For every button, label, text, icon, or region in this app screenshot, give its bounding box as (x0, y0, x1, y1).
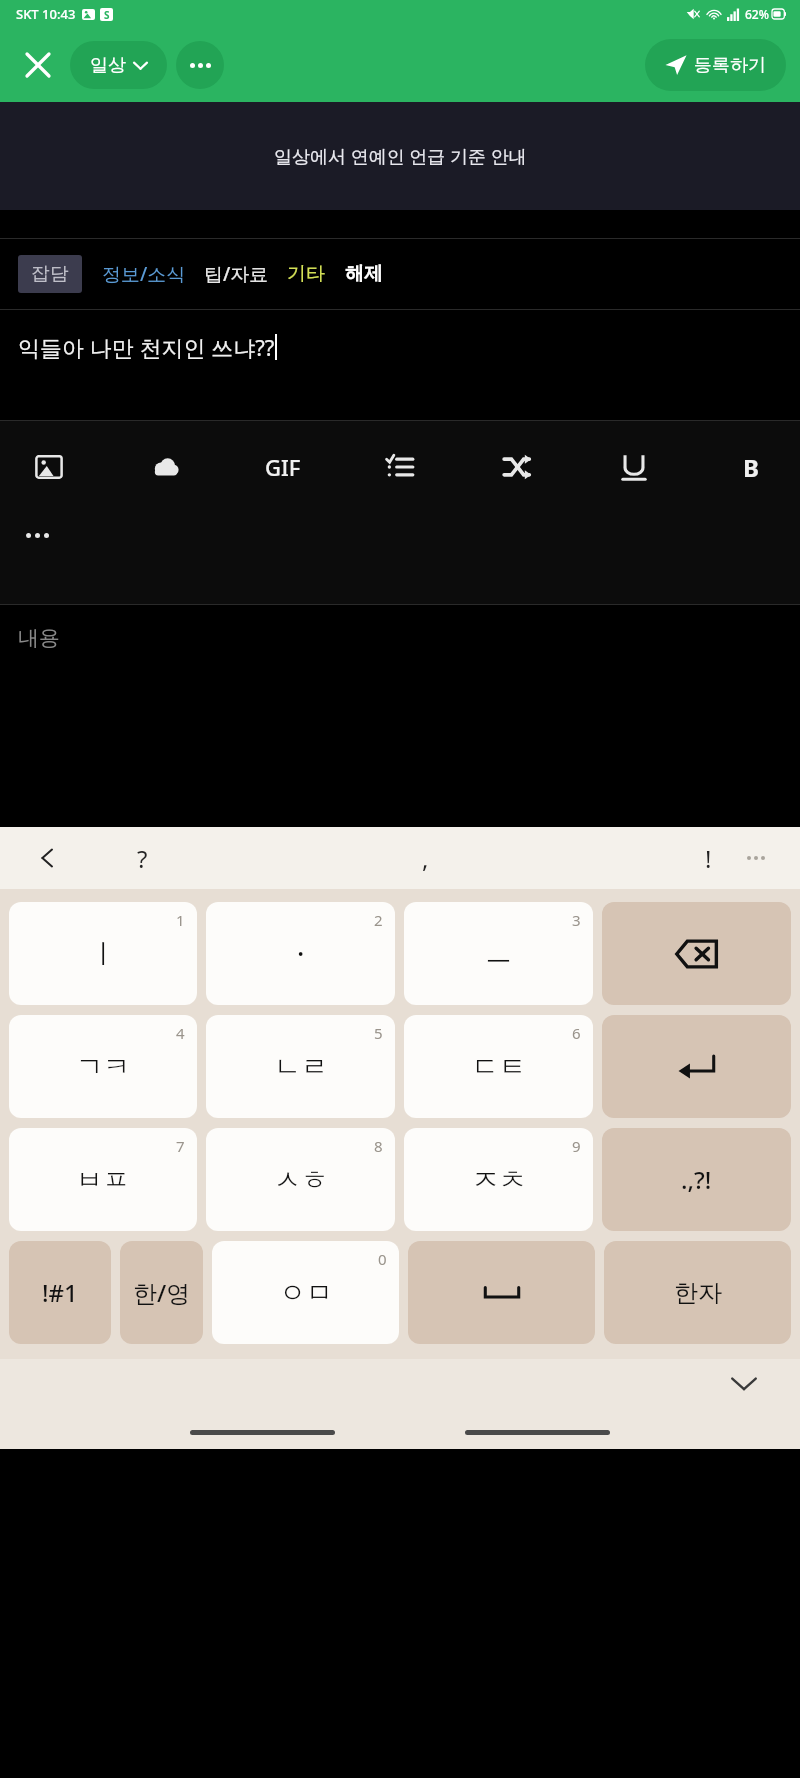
button[interactable]: 더보기 (176, 41, 224, 89)
button[interactable]: !#1 (9, 1241, 111, 1344)
button[interactable]: 9 (404, 1128, 593, 1231)
staticText: 정보/소식 (102, 261, 186, 287)
staticText: 한/영 (133, 1276, 191, 1309)
staticText: ! (705, 842, 712, 875)
staticText: , (422, 842, 429, 875)
staticText: 해제 (345, 262, 383, 286)
staticText: 0 (378, 1249, 387, 1269)
button[interactable]: B (728, 444, 774, 490)
button[interactable]: 7 (9, 1128, 197, 1231)
staticText: S (104, 8, 110, 21)
button[interactable]: 목록 (377, 444, 423, 490)
button[interactable]: 한/영 (120, 1241, 203, 1344)
button[interactable]: 3 (404, 902, 593, 1005)
staticText: .,?! (681, 1163, 712, 1196)
button[interactable]: 4 (9, 1015, 197, 1118)
staticText: B (743, 451, 759, 484)
staticText: ㅡ (485, 937, 512, 971)
button[interactable]: 6 (404, 1015, 593, 1118)
staticText: 익들아 나만 천지인 쓰냐?? (18, 332, 275, 362)
button[interactable]: , (403, 836, 447, 880)
staticText: ㅣ (90, 937, 117, 971)
staticText: 한자 (674, 1278, 722, 1308)
button[interactable]: ? (120, 836, 164, 880)
button[interactable]: 기타 (287, 255, 325, 293)
staticText: ? (137, 842, 148, 875)
staticText: ㅈㅊ (472, 1163, 526, 1197)
button[interactable]: 익들아 나만 천지인 쓰냐?? (0, 310, 800, 420)
staticText: 기타 (287, 262, 325, 286)
staticText: ㅂㅍ (76, 1163, 130, 1197)
staticText: 5 (374, 1023, 383, 1043)
staticText: 3 (572, 910, 581, 930)
staticText: 등록하기 (694, 54, 766, 77)
button[interactable]: 팁/자료 (204, 254, 269, 294)
button[interactable]: 내용 (0, 605, 800, 827)
staticText: 잡담 (31, 262, 69, 286)
button[interactable]: 사진 (26, 444, 72, 490)
button[interactable]: 키보드 닫기 (722, 1361, 766, 1405)
button[interactable]: 0 (212, 1241, 399, 1344)
button[interactable]: 잡담 (18, 255, 82, 293)
staticText: 6 (572, 1023, 581, 1043)
staticText: 7 (176, 1136, 185, 1156)
staticText: ㄱㅋ (76, 1050, 130, 1084)
staticText: 일상 (90, 54, 126, 77)
button[interactable]: 클라우드 (143, 444, 189, 490)
staticText: 4 (176, 1023, 185, 1043)
staticText: ㅅㅎ (274, 1163, 328, 1197)
staticText: 8 (374, 1136, 383, 1156)
staticText: 62% (745, 6, 769, 22)
staticText: 팁/자료 (204, 261, 269, 287)
staticText: ㅇㅁ (279, 1276, 333, 1310)
button[interactable]: 한자 (604, 1241, 791, 1344)
button[interactable]: 이전 (30, 840, 66, 876)
staticText: 내용 (18, 625, 60, 651)
staticText: 9 (572, 1136, 581, 1156)
staticText: 일상에서 연예인 언급 기준 안내 (274, 144, 527, 169)
button[interactable]: .,?! (602, 1128, 791, 1231)
button[interactable]: 닫기 (14, 41, 62, 89)
staticText: GIF (265, 452, 301, 482)
button[interactable]: 2 (206, 902, 395, 1005)
button[interactable]: 스페이스 (408, 1241, 595, 1344)
button[interactable]: 셔플 (494, 444, 540, 490)
button[interactable]: 일상 (70, 41, 167, 89)
button[interactable]: 더보기 (26, 513, 70, 557)
staticText: 2 (374, 910, 383, 930)
button[interactable]: GIF (260, 444, 306, 490)
staticText: ㄴㄹ (274, 1050, 328, 1084)
button[interactable]: 일상에서 연예인 언급 기준 안내 (0, 102, 800, 210)
button[interactable]: 밑줄 (611, 444, 657, 490)
staticText: · (297, 935, 305, 972)
staticText: !#1 (42, 1276, 78, 1309)
button[interactable]: 5 (206, 1015, 395, 1118)
button[interactable]: 등록하기 (645, 39, 786, 91)
staticText: ㄷㅌ (472, 1050, 526, 1084)
button[interactable]: 더보기 (738, 840, 774, 876)
staticText: SKT 10:43 (16, 5, 76, 23)
button[interactable]: 지우기 (602, 902, 791, 1005)
button[interactable]: 엔터 (602, 1015, 791, 1118)
staticText: 1 (176, 910, 185, 930)
button[interactable]: ! (686, 836, 730, 880)
button[interactable]: 8 (206, 1128, 395, 1231)
button[interactable]: 1 (9, 902, 197, 1005)
button[interactable]: 정보/소식 (102, 254, 186, 294)
button[interactable]: 해제 (345, 255, 383, 293)
